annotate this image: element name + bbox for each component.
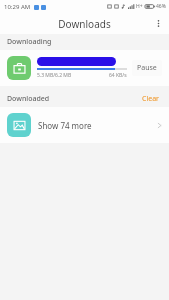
staticText: Downloaded: [7, 94, 50, 104]
staticText: Clear: [142, 94, 159, 104]
button[interactable]: 5.3 MB/6.2 MB: [0, 50, 169, 86]
staticText: 64 KB/s: [109, 72, 127, 79]
staticText: Downloading: [7, 37, 52, 47]
staticText: 5.3 MB/6.2 MB: [37, 72, 72, 79]
staticText: Downloads: [58, 17, 111, 31]
button[interactable]: Clear: [139, 92, 162, 106]
staticText: 46%: [156, 3, 166, 10]
button[interactable]: More options: [148, 13, 169, 34]
button[interactable]: Pause: [132, 60, 162, 76]
staticText: Pause: [137, 63, 157, 73]
staticText: H+: [136, 3, 143, 10]
staticText: 10:29 AM: [4, 3, 31, 11]
button[interactable]: Show 74 more: [0, 107, 169, 143]
staticText: Show 74 more: [38, 120, 157, 131]
